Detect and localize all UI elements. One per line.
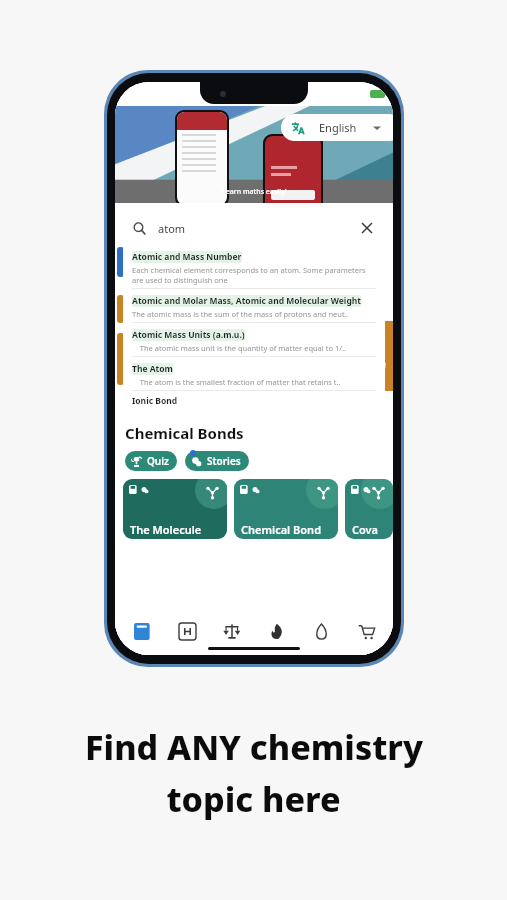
staticText: Stories bbox=[207, 454, 241, 468]
button[interactable]: The Atom bbox=[132, 360, 376, 394]
staticText: Atomic and Molar Mass, Atomic and Molecu… bbox=[132, 295, 361, 307]
button[interactable]: Balance bbox=[214, 618, 250, 644]
staticText: rio bbox=[370, 341, 386, 356]
button[interactable]: Periodic table bbox=[169, 618, 205, 644]
staticText: Atomic Mass Units (a.m.u.) bbox=[132, 329, 245, 341]
staticText: Ionic Bond bbox=[132, 395, 178, 407]
button[interactable]: Stories bbox=[185, 451, 249, 471]
staticText: The atomic mass unit is the quantity of … bbox=[132, 343, 347, 353]
staticText: Cova bbox=[352, 522, 379, 537]
staticText: Ele bbox=[370, 356, 387, 371]
staticText: The atom is the smallest fraction of mat… bbox=[132, 377, 341, 387]
button[interactable]: Cova bbox=[345, 479, 393, 539]
staticText: Find ANY chemistry bbox=[85, 724, 423, 770]
button[interactable]: Atomic and Molar Mass, Atomic and Molecu… bbox=[132, 292, 376, 326]
button[interactable]: Chemical Bond bbox=[234, 479, 338, 539]
staticText: Quiz bbox=[147, 454, 169, 468]
button[interactable]: Atomic Mass Units (a.m.u.) bbox=[132, 326, 376, 360]
staticText: The Atom bbox=[132, 363, 173, 375]
button[interactable]: English bbox=[281, 114, 393, 141]
staticText: The atomic mass is the sum of the mass o… bbox=[132, 309, 349, 319]
button[interactable]: The Molecule bbox=[123, 479, 227, 539]
button[interactable]: Shop bbox=[348, 618, 384, 644]
staticText: Learn maths easily! bbox=[222, 187, 287, 197]
staticText: English bbox=[319, 120, 357, 135]
staticText: The Molecule bbox=[130, 522, 202, 537]
button[interactable]: Quiz bbox=[125, 451, 177, 471]
staticText: topic here bbox=[166, 776, 341, 822]
button[interactable]: Reactions bbox=[258, 618, 294, 644]
button[interactable]: atom bbox=[123, 213, 385, 243]
staticText: atom bbox=[158, 221, 186, 236]
button[interactable]: Book bbox=[124, 618, 160, 644]
staticText: Chemical Bonds bbox=[125, 423, 244, 443]
button[interactable]: Atomic and Mass Number bbox=[132, 248, 376, 292]
staticText: Chemical Bond bbox=[241, 522, 322, 537]
staticText: Atomic and Mass Number bbox=[132, 251, 242, 263]
button[interactable]: Solutions bbox=[303, 618, 339, 644]
staticText: Each chemical element corresponds to an … bbox=[132, 265, 376, 285]
button[interactable]: Clear search bbox=[359, 220, 375, 236]
